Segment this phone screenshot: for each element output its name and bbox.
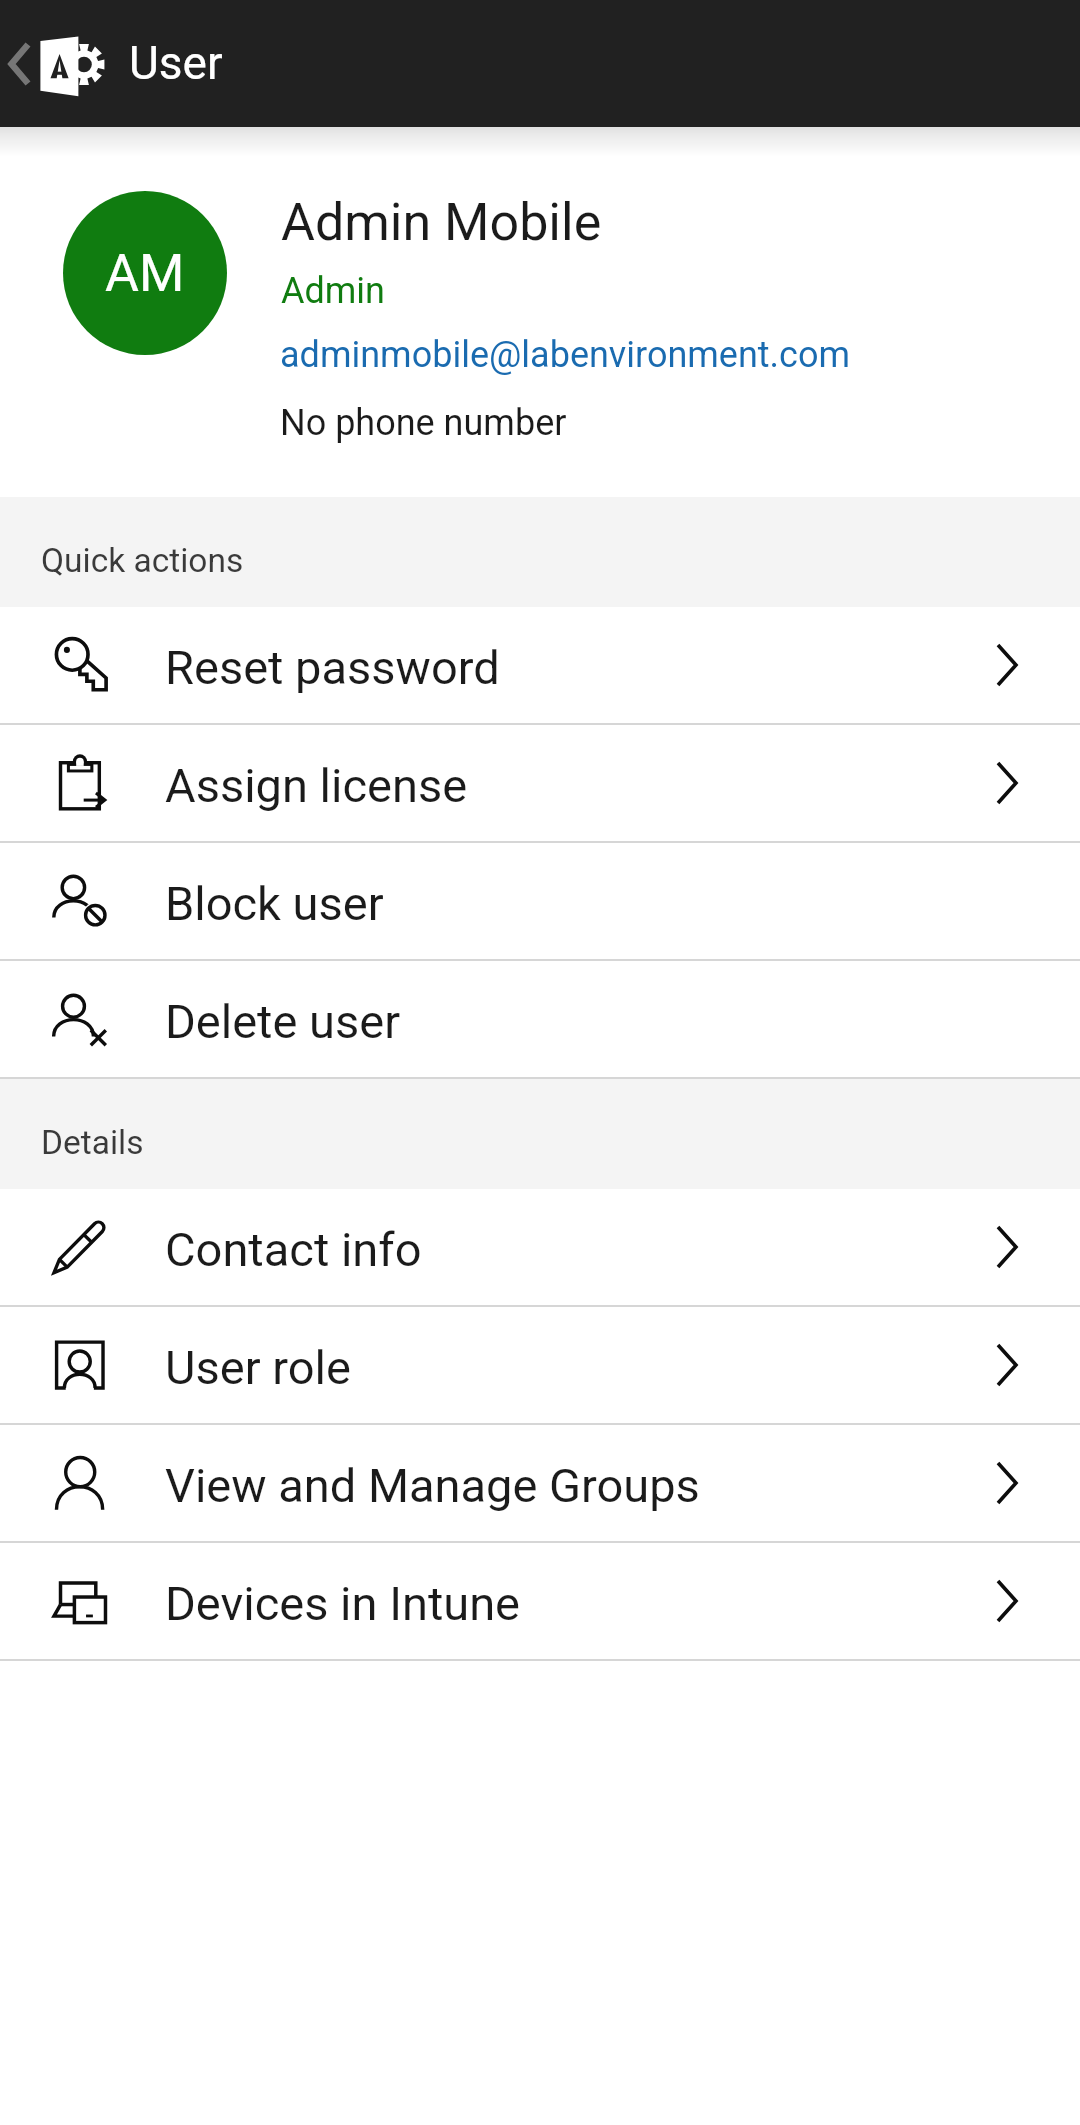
staticText: adminmobile@labenvironment.com: [280, 334, 851, 376]
button[interactable]: Delete user: [0, 961, 1080, 1077]
button[interactable]: Block user: [0, 843, 1080, 959]
staticText: User: [129, 36, 223, 90]
staticText: Reset password: [165, 640, 500, 695]
staticText: Assign license: [165, 758, 468, 813]
button[interactable]: Back: [0, 34, 40, 94]
staticText: View and Manage Groups: [165, 1458, 700, 1513]
staticText: Delete user: [165, 994, 401, 1049]
staticText: Admin Mobile: [281, 192, 602, 253]
staticText: No phone number: [280, 402, 567, 444]
staticText: Admin: [281, 270, 385, 312]
button[interactable]: View and Manage Groups: [0, 1425, 1080, 1541]
staticText: Details: [41, 1123, 144, 1162]
staticText: User role: [165, 1340, 351, 1395]
button[interactable]: User role: [0, 1307, 1080, 1423]
staticText: Devices in Intune: [165, 1576, 521, 1631]
button[interactable]: Contact info: [0, 1189, 1080, 1305]
staticText: Quick actions: [41, 541, 244, 580]
staticText: Contact info: [165, 1222, 422, 1277]
staticText: Block user: [165, 876, 384, 931]
button[interactable]: Assign license: [0, 725, 1080, 841]
staticText: AM: [105, 243, 185, 304]
button[interactable]: Reset password: [0, 607, 1080, 723]
button[interactable]: Devices in Intune: [0, 1543, 1080, 1659]
